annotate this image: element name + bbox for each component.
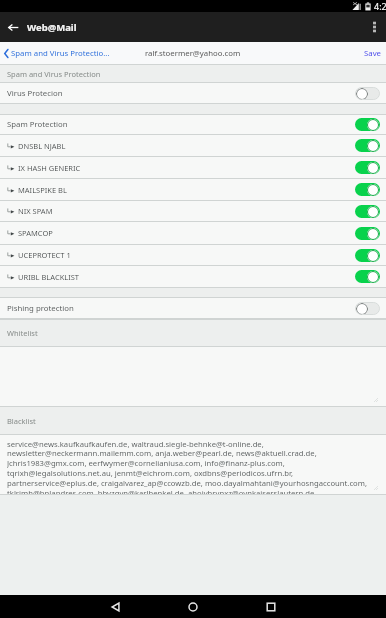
button[interactable]: Disabled toggle <box>355 302 380 315</box>
button[interactable]: Enabled toggle <box>355 161 380 174</box>
button[interactable]: NIX SPAM <box>0 201 386 221</box>
staticText: Spam and Virus Protection <box>7 69 101 79</box>
button[interactable]: Disabled toggle <box>355 87 380 100</box>
button[interactable]: Enabled toggle <box>355 249 380 262</box>
staticText: 4:28 <box>374 0 386 12</box>
staticText: Blacklist <box>7 416 36 426</box>
button[interactable]: Home <box>154 595 232 618</box>
staticText: Spam and Virus Protectio... <box>11 48 110 59</box>
staticText: NIX SPAM <box>18 206 53 216</box>
button[interactable]: Pishing protection <box>0 298 386 318</box>
staticText: IX HASH GENERIC <box>18 163 81 173</box>
button[interactable]: Spam Protection <box>0 115 386 134</box>
button[interactable]: SPAMCOP <box>0 222 386 244</box>
button[interactable]: Enabled toggle <box>355 227 380 240</box>
button[interactable]: Enabled toggle <box>355 139 380 152</box>
button[interactable]: Recent apps <box>232 595 310 618</box>
button[interactable]: DNSBL NJABL <box>0 135 386 156</box>
button[interactable]: Virus Protecion <box>0 83 386 103</box>
staticText: MAILSPIKE BL <box>18 185 67 195</box>
button[interactable]: Back <box>76 595 154 618</box>
button[interactable]: URIBL BLACKLIST <box>0 266 386 287</box>
staticText: Pishing protection <box>7 303 74 314</box>
staticText: ralf.stoermer@yahoo.com <box>145 48 241 59</box>
staticText: SPAMCOP <box>18 228 53 238</box>
staticText: Virus Protecion <box>7 88 63 99</box>
staticText: service@news.kaufkaufkaufen.de, waltraud… <box>7 439 368 494</box>
button[interactable]: UCEPROTECT 1 <box>0 245 386 265</box>
button[interactable]: Navigate up <box>0 12 27 42</box>
staticText: DNSBL NJABL <box>18 141 66 151</box>
button[interactable]: Enabled toggle <box>355 183 380 196</box>
staticText: Web@Mail <box>27 21 77 34</box>
button[interactable]: MAILSPIKE BL <box>0 179 386 200</box>
staticText: UCEPROTECT 1 <box>18 250 71 260</box>
staticText: Save <box>364 48 382 59</box>
button[interactable]: Spam and Virus Protectio... <box>0 48 114 59</box>
button[interactable]: Enabled toggle <box>355 270 380 283</box>
staticText: Whitelist <box>7 328 38 338</box>
button[interactable]: Save <box>360 48 386 59</box>
button[interactable]: Enabled toggle <box>355 205 380 218</box>
button[interactable]: IX HASH GENERIC <box>0 157 386 178</box>
staticText: Spam Protection <box>7 119 68 130</box>
staticText: URIBL BLACKLIST <box>18 272 80 282</box>
button[interactable]: More options <box>362 12 386 42</box>
button[interactable]: Enabled toggle <box>355 118 380 131</box>
